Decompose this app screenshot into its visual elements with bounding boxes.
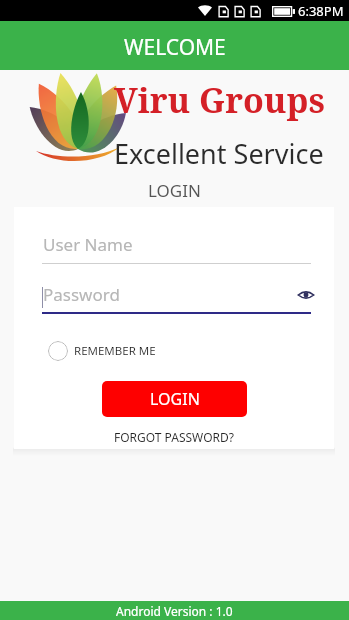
button[interactable]: FORGOT PASSWORD? [114, 429, 234, 445]
staticText: LOGIN [150, 388, 200, 410]
staticText: Android Version : 1.0 [116, 603, 233, 619]
staticText: Excellent Service [114, 135, 324, 172]
button[interactable]: LOGIN [102, 381, 247, 417]
staticText: User Name [43, 233, 133, 256]
staticText: Viru Groups [114, 77, 325, 123]
staticText: WELCOME [124, 33, 226, 62]
button[interactable]: Show password [293, 283, 319, 307]
staticText: LOGIN [148, 179, 201, 202]
button[interactable]: REMEMBER ME [48, 341, 156, 361]
staticText: 6:38PM [298, 2, 344, 20]
staticText: REMEMBER ME [74, 343, 156, 359]
staticText: Password [43, 283, 120, 306]
